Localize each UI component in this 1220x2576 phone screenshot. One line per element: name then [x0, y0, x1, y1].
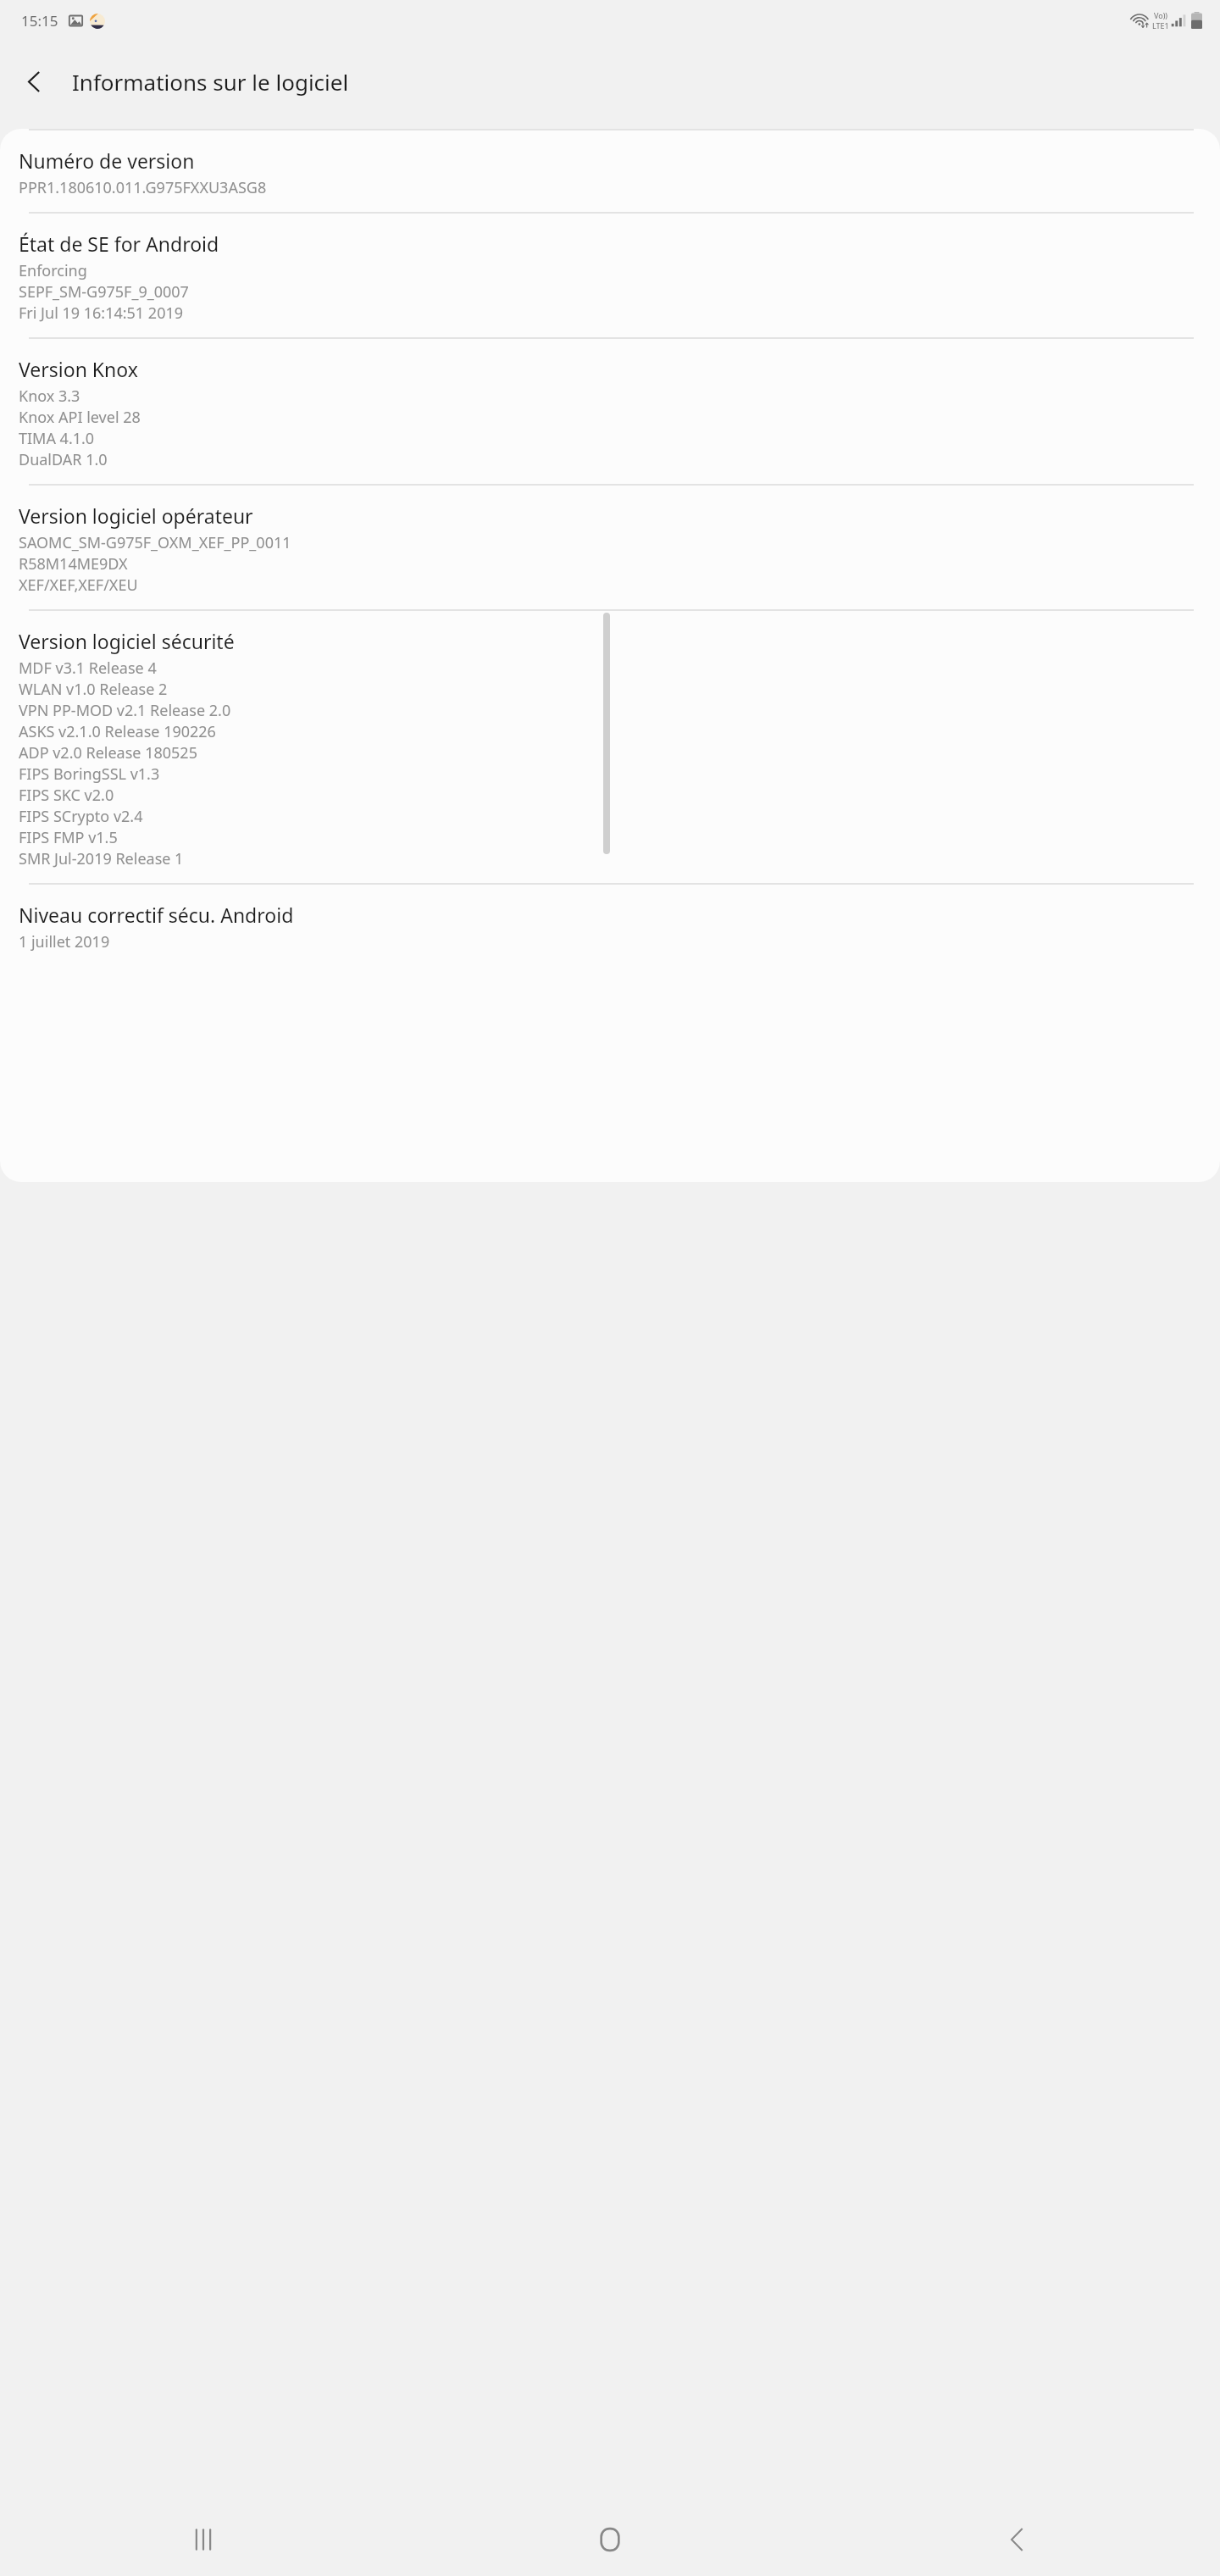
- staticText: DualDAR 1.0: [19, 449, 108, 470]
- button[interactable]: État de SE for Android: [0, 214, 1220, 337]
- staticText: Knox 3.3: [19, 386, 80, 407]
- button[interactable]: Home: [582, 2512, 638, 2568]
- staticText: 15:15: [21, 11, 58, 31]
- staticText: SMR Jul-2019 Release 1: [19, 848, 184, 869]
- staticText: Version logiciel opérateur: [19, 502, 253, 529]
- button[interactable]: Version logiciel opérateur: [0, 486, 1220, 609]
- staticText: Informations sur le logiciel: [72, 67, 349, 97]
- staticText: ASKS v2.1.0 Release 190226: [19, 721, 216, 742]
- staticText: ADP v2.0 Release 180525: [19, 742, 197, 763]
- button[interactable]: Version Knox: [0, 339, 1220, 484]
- staticText: 1 juillet 2019: [19, 931, 110, 952]
- staticText: WLAN v1.0 Release 2: [19, 679, 168, 700]
- staticText: Version logiciel sécurité: [19, 628, 235, 654]
- staticText: FIPS SKC v2.0: [19, 785, 114, 806]
- button[interactable]: Numéro de version: [0, 130, 1220, 212]
- button[interactable]: Recents: [175, 2512, 231, 2568]
- staticText: VPN PP-MOD v2.1 Release 2.0: [19, 700, 231, 721]
- staticText: PPR1.180610.011.G975FXXU3ASG8: [19, 177, 267, 198]
- staticText: FIPS FMP v1.5: [19, 827, 118, 848]
- button[interactable]: Niveau correctif sécu. Android: [0, 885, 1220, 966]
- staticText: R58M14ME9DX: [19, 553, 128, 575]
- staticText: FIPS SCrypto v2.4: [19, 806, 143, 827]
- staticText: TIMA 4.1.0: [19, 428, 95, 449]
- staticText: Vo)): [1154, 10, 1168, 20]
- button[interactable]: Back: [9, 57, 58, 106]
- staticText: XEF/XEF,XEF/XEU: [19, 575, 138, 596]
- staticText: Fri Jul 19 16:14:51 2019: [19, 303, 184, 324]
- staticText: Enforcing: [19, 260, 87, 281]
- button[interactable]: Back: [989, 2512, 1045, 2568]
- staticText: SAOMC_SM-G975F_OXM_XEF_PP_0011: [19, 532, 291, 553]
- staticText: Numéro de version: [19, 147, 195, 174]
- staticText: Niveau correctif sécu. Android: [19, 902, 294, 928]
- staticText: Version Knox: [19, 356, 138, 382]
- staticText: Knox API level 28: [19, 407, 141, 428]
- button[interactable]: Version logiciel sécurité: [0, 611, 1220, 883]
- staticText: État de SE for Android: [19, 230, 219, 257]
- staticText: LTE1: [1152, 20, 1169, 31]
- staticText: MDF v3.1 Release 4: [19, 658, 157, 679]
- staticText: SEPF_SM-G975F_9_0007: [19, 281, 189, 303]
- staticText: FIPS BoringSSL v1.3: [19, 763, 160, 785]
